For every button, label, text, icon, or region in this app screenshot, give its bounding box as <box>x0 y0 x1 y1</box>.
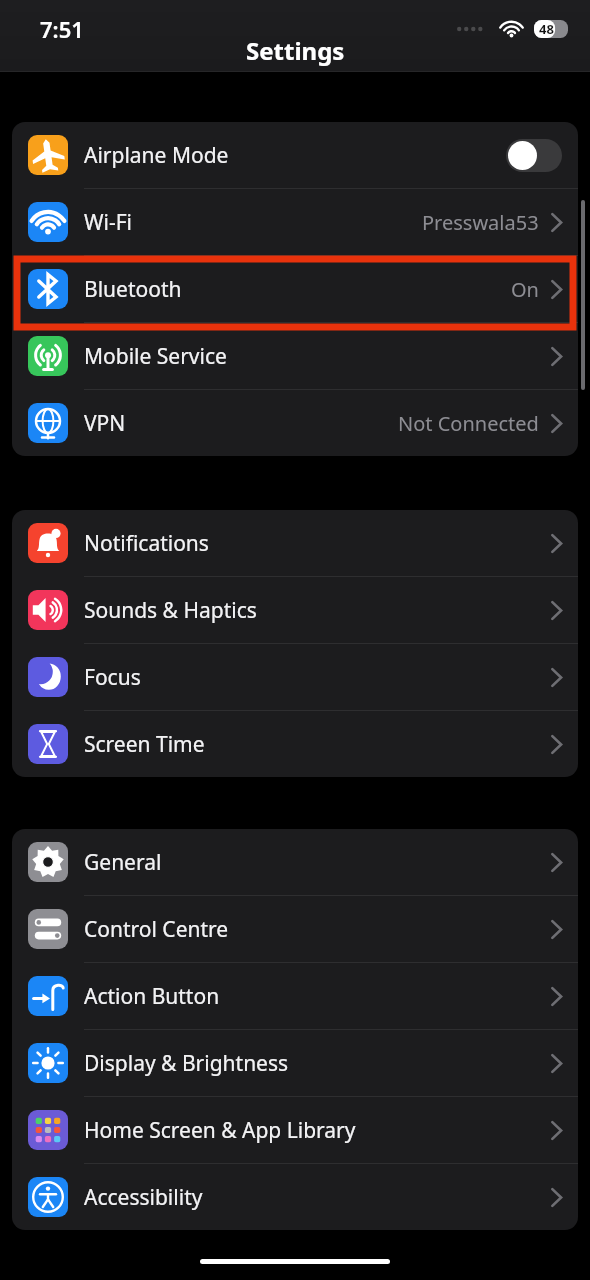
staticText: 7:51 <box>40 14 84 44</box>
button[interactable]: Wi-Fi <box>12 189 578 255</box>
staticText: On <box>511 276 539 303</box>
staticText: Airplane Mode <box>84 141 229 170</box>
staticText: Screen Time <box>84 730 205 759</box>
button[interactable]: Notifications <box>12 510 578 576</box>
staticText: 48 <box>539 20 554 38</box>
button[interactable]: Airplane Mode toggle <box>506 139 562 172</box>
staticText: General <box>84 848 162 877</box>
staticText: Notifications <box>84 529 209 558</box>
staticText: VPN <box>84 409 126 438</box>
button[interactable]: Sounds & Haptics <box>12 577 578 643</box>
button[interactable]: Screen Time <box>12 711 578 777</box>
button[interactable]: Display & Brightness <box>12 1030 578 1096</box>
button[interactable]: Bluetooth <box>12 256 578 322</box>
button[interactable]: Control Centre <box>12 896 578 962</box>
staticText: Not Connected <box>398 410 539 437</box>
staticText: Action Button <box>84 982 220 1011</box>
staticText: Settings <box>246 34 345 67</box>
staticText: Bluetooth <box>84 275 182 304</box>
button[interactable]: Home Screen & App Library <box>12 1097 578 1163</box>
staticText: Mobile Service <box>84 342 227 371</box>
button[interactable]: General <box>12 829 578 895</box>
staticText: Sounds & Haptics <box>84 596 257 625</box>
staticText: Home Screen & App Library <box>84 1116 356 1145</box>
button[interactable]: Airplane Mode <box>12 122 578 188</box>
staticText: Control Centre <box>84 915 229 944</box>
staticText: Focus <box>84 663 141 692</box>
staticText: Wi-Fi <box>84 208 133 237</box>
staticText: Accessibility <box>84 1183 203 1212</box>
staticText: Display & Brightness <box>84 1049 289 1078</box>
button[interactable]: Action Button <box>12 963 578 1029</box>
button[interactable]: Focus <box>12 644 578 710</box>
button[interactable]: Accessibility <box>12 1164 578 1230</box>
staticText: Presswala53 <box>422 209 539 236</box>
button[interactable]: Mobile Service <box>12 323 578 389</box>
button[interactable]: VPN <box>12 390 578 456</box>
